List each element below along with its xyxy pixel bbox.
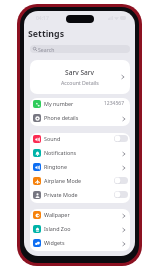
staticText: Widgets <box>44 239 65 246</box>
button[interactable]: Wallpaper <box>30 209 130 223</box>
staticText: Airplane Mode <box>44 177 82 184</box>
button[interactable]: Airplane Mode <box>30 175 130 189</box>
button[interactable]: Sarv Sarv <box>30 60 130 94</box>
button[interactable]: Phone details <box>30 112 130 126</box>
staticText: Island Zoo <box>44 225 71 232</box>
staticText: Settings <box>28 28 65 40</box>
staticText: Phone details <box>44 114 79 121</box>
staticText: Ringtone <box>44 163 67 170</box>
staticText: 04:17 <box>36 15 49 22</box>
staticText: Sound <box>44 135 61 142</box>
button[interactable]: Toggle <box>114 177 128 184</box>
button[interactable]: Private Mode <box>30 189 130 203</box>
staticText: 1234567 <box>104 100 125 107</box>
button[interactable]: Ringtone <box>30 161 130 175</box>
staticText: Sarv Sarv <box>65 68 95 77</box>
staticText: My number <box>44 100 74 107</box>
button[interactable]: Toggle <box>114 191 128 198</box>
staticText: Search <box>38 46 55 53</box>
staticText: Account Details <box>61 79 99 86</box>
button[interactable]: Search <box>30 45 130 53</box>
button[interactable]: Island Zoo <box>30 223 130 237</box>
staticText: Wallpaper <box>44 211 70 218</box>
button[interactable]: My number <box>30 98 130 112</box>
button[interactable]: Toggle <box>114 135 128 142</box>
button[interactable]: Widgets <box>30 237 130 251</box>
button[interactable]: Notifications <box>30 147 130 161</box>
button[interactable]: Sound <box>30 133 130 147</box>
staticText: Notifications <box>44 149 77 156</box>
staticText: Private Mode <box>44 191 78 198</box>
